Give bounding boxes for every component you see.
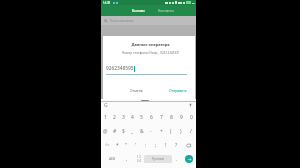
button[interactable]: 3 <box>119 110 128 124</box>
staticText: 9 <box>180 114 183 121</box>
staticText: @ <box>103 128 108 135</box>
staticText: _ <box>131 128 134 135</box>
staticText: / <box>190 128 192 135</box>
button[interactable]: + <box>156 124 166 138</box>
button[interactable]: 7 <box>156 110 166 124</box>
button[interactable]: 1 <box>101 110 110 124</box>
staticText: Контакты <box>158 8 174 13</box>
staticText: 6 <box>150 114 153 121</box>
staticText: ; <box>155 142 157 149</box>
staticText: 0 <box>190 114 193 121</box>
button[interactable]: 4 <box>128 110 137 124</box>
button[interactable]: / <box>186 124 196 138</box>
button[interactable]: Вызовы <box>131 7 146 14</box>
button[interactable]: Контакты <box>157 7 175 14</box>
staticText: - <box>150 128 152 135</box>
staticText: 9262348595 <box>106 65 134 72</box>
button[interactable]: ! <box>161 138 171 152</box>
staticText: , <box>126 156 128 162</box>
staticText: 8 <box>170 114 173 121</box>
staticText: 7 <box>160 114 163 121</box>
button[interactable]: Отправить <box>165 86 191 95</box>
staticText: # <box>113 128 117 135</box>
button[interactable]: 1 2 <box>134 152 144 166</box>
button[interactable]: @ <box>101 124 110 138</box>
button[interactable]: Backspace <box>181 138 196 152</box>
button[interactable]: 0 <box>186 110 196 124</box>
button[interactable]: =\< <box>101 138 113 152</box>
staticText: АБВ <box>109 157 116 161</box>
staticText: 3 <box>122 114 125 121</box>
staticText: G <box>104 102 108 109</box>
staticText: 4 <box>131 114 134 121</box>
button[interactable]: 8 <box>166 110 176 124</box>
staticText: & <box>140 128 144 135</box>
staticText: ! <box>165 142 167 149</box>
staticText: 3 4 <box>137 159 141 163</box>
staticText: . <box>176 156 178 162</box>
button[interactable]: # <box>110 124 119 138</box>
staticText: Отмена <box>130 88 143 93</box>
staticText: " <box>125 142 128 149</box>
button[interactable]: Отмена <box>126 86 147 95</box>
staticText: =\< <box>105 143 110 147</box>
button[interactable]: ? <box>171 138 181 152</box>
button[interactable]: . <box>172 152 182 166</box>
button[interactable]: 5 <box>137 110 146 124</box>
staticText: Вызовы <box>132 8 145 13</box>
staticText: ? <box>175 142 178 149</box>
button[interactable]: АБВ <box>104 152 120 166</box>
staticText: Номер телефона (Напр., 9261234567) <box>110 51 191 55</box>
button[interactable]: Voice input <box>188 103 193 108</box>
staticText: Отправить <box>169 88 187 93</box>
button[interactable]: & <box>137 124 146 138</box>
button[interactable]: " <box>122 138 131 152</box>
staticText: Данные оператора <box>110 42 191 47</box>
button[interactable]: - <box>146 124 156 138</box>
button[interactable]: Enter <box>185 155 193 163</box>
staticText: $ <box>122 128 125 135</box>
staticText: + <box>160 128 163 135</box>
staticText: * <box>116 142 119 149</box>
staticText: Поиск контактов <box>110 19 134 23</box>
staticText: 2 <box>113 114 116 121</box>
staticText: 82 <box>192 1 195 4</box>
button[interactable]: _ <box>128 124 137 138</box>
staticText: Русский <box>152 157 164 161</box>
button[interactable]: $ <box>119 124 128 138</box>
staticText: ) <box>180 128 182 135</box>
button[interactable]: 6 <box>146 110 156 124</box>
button[interactable]: 2 <box>110 110 119 124</box>
button[interactable]: Русский <box>144 155 172 163</box>
staticText: 5 <box>140 114 143 121</box>
button[interactable]: * <box>113 138 122 152</box>
staticText: : <box>145 142 147 149</box>
button[interactable]: ( <box>166 124 176 138</box>
staticText: 1 <box>104 114 107 121</box>
staticText: ( <box>170 128 172 135</box>
staticText: 14:39 <box>103 1 111 5</box>
button[interactable]: ) <box>176 124 186 138</box>
staticText: 1 2 <box>137 155 141 159</box>
button[interactable]: ' <box>131 138 141 152</box>
button[interactable]: : <box>141 138 151 152</box>
button[interactable]: ; <box>151 138 161 152</box>
button[interactable]: , <box>120 152 134 166</box>
button[interactable]: 9 <box>176 110 186 124</box>
staticText: ' <box>135 142 137 149</box>
